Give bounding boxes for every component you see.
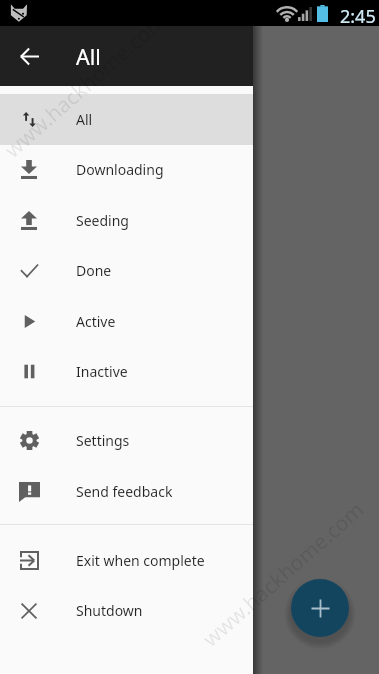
button[interactable]: Shutdown [0, 585, 253, 636]
staticText: All [76, 110, 93, 129]
staticText: Send feedback [76, 482, 173, 501]
button[interactable]: All [0, 94, 253, 145]
staticText: Inactive [76, 362, 128, 381]
staticText: 2:45 [340, 4, 376, 29]
button[interactable]: Downloading [0, 144, 253, 195]
staticText: Settings [76, 431, 130, 450]
button[interactable]: Settings [0, 415, 253, 466]
button[interactable]: Active [0, 296, 253, 347]
staticText: Done [76, 261, 112, 280]
staticText: Active [76, 312, 116, 331]
staticText: Exit when complete [76, 551, 205, 570]
staticText: www.hackhome.com [197, 495, 370, 652]
staticText: www.hackhome.com [0, 6, 172, 163]
staticText: All [76, 42, 101, 71]
button[interactable]: Done [0, 245, 253, 296]
button[interactable]: Send feedback [0, 466, 253, 517]
button[interactable]: Seeding [0, 195, 253, 246]
button[interactable]: Exit when complete [0, 535, 253, 586]
button[interactable]: Inactive [0, 346, 253, 397]
button[interactable]: Back [0, 26, 58, 86]
staticText: Downloading [76, 160, 164, 179]
staticText: Shutdown [76, 601, 143, 620]
staticText: Seeding [76, 211, 129, 230]
button[interactable]: Add torrent [291, 579, 349, 637]
